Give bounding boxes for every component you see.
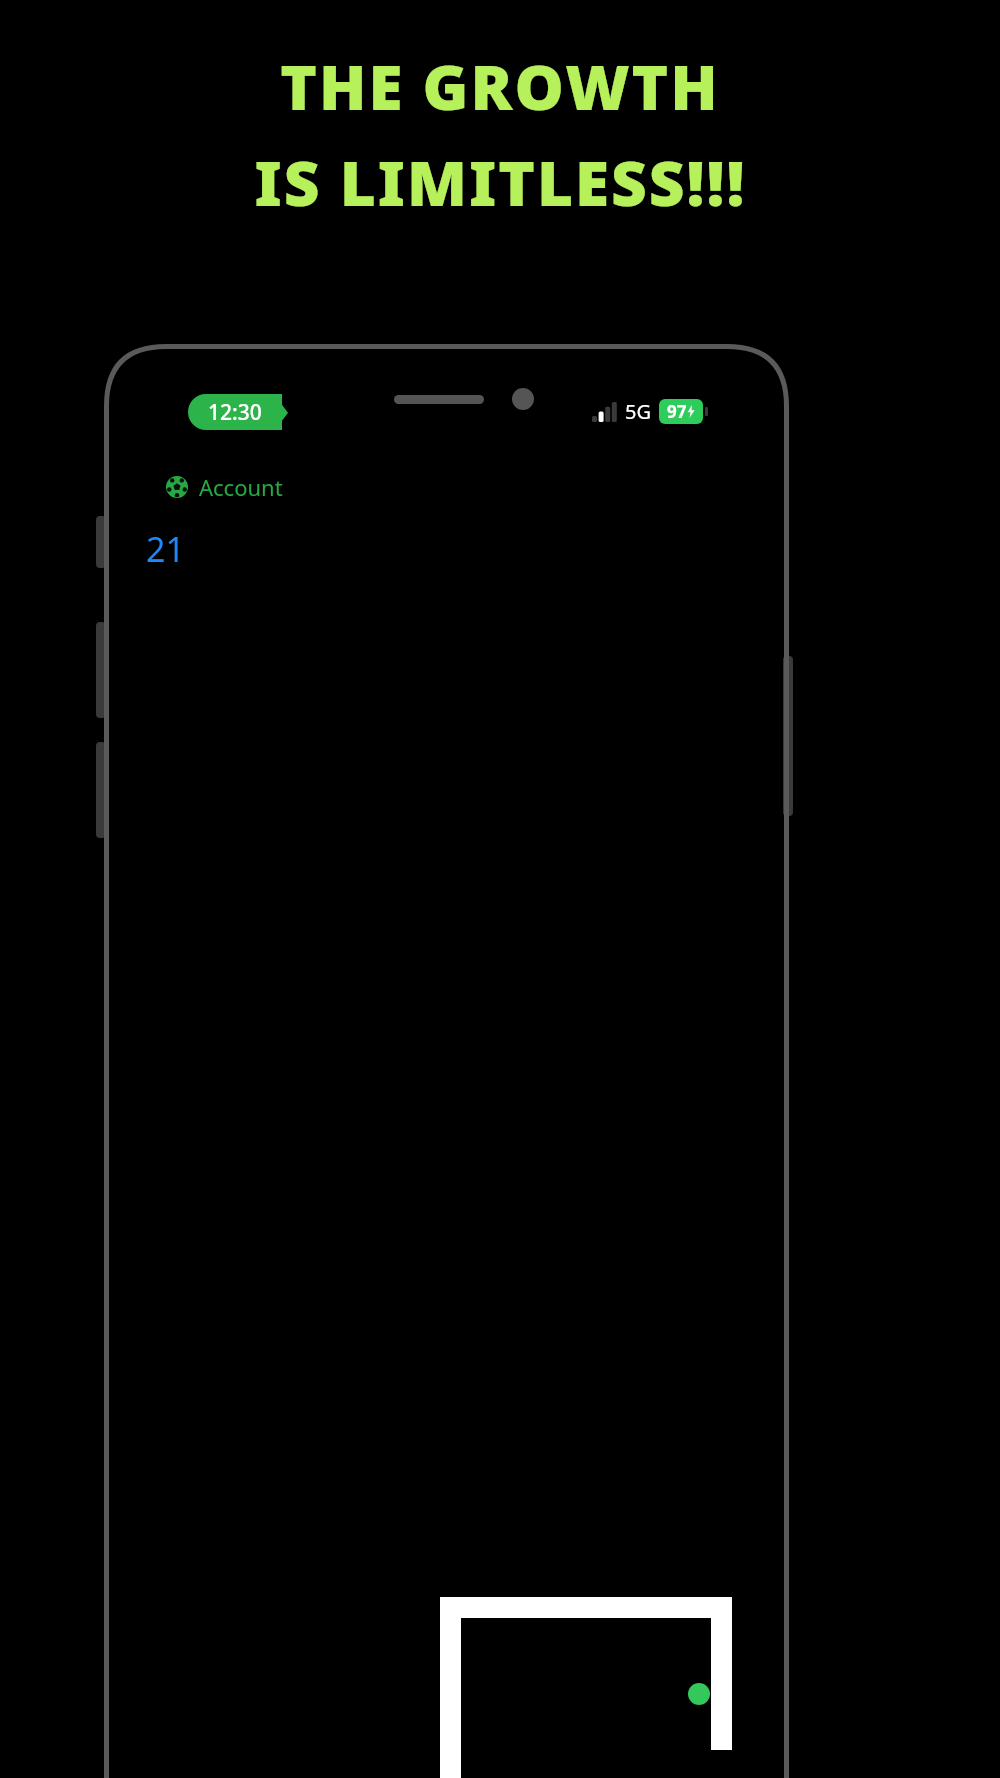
staticText: 21 <box>146 526 185 572</box>
staticText: 97 <box>667 400 687 423</box>
staticText: 12:30 <box>208 398 262 427</box>
staticText: Account <box>199 472 283 502</box>
button[interactable]: Account <box>162 468 287 506</box>
staticText: THE GROWTH <box>280 44 720 128</box>
staticText: 5G <box>625 398 651 425</box>
staticText: IS LIMITLESS!!! <box>254 140 747 224</box>
